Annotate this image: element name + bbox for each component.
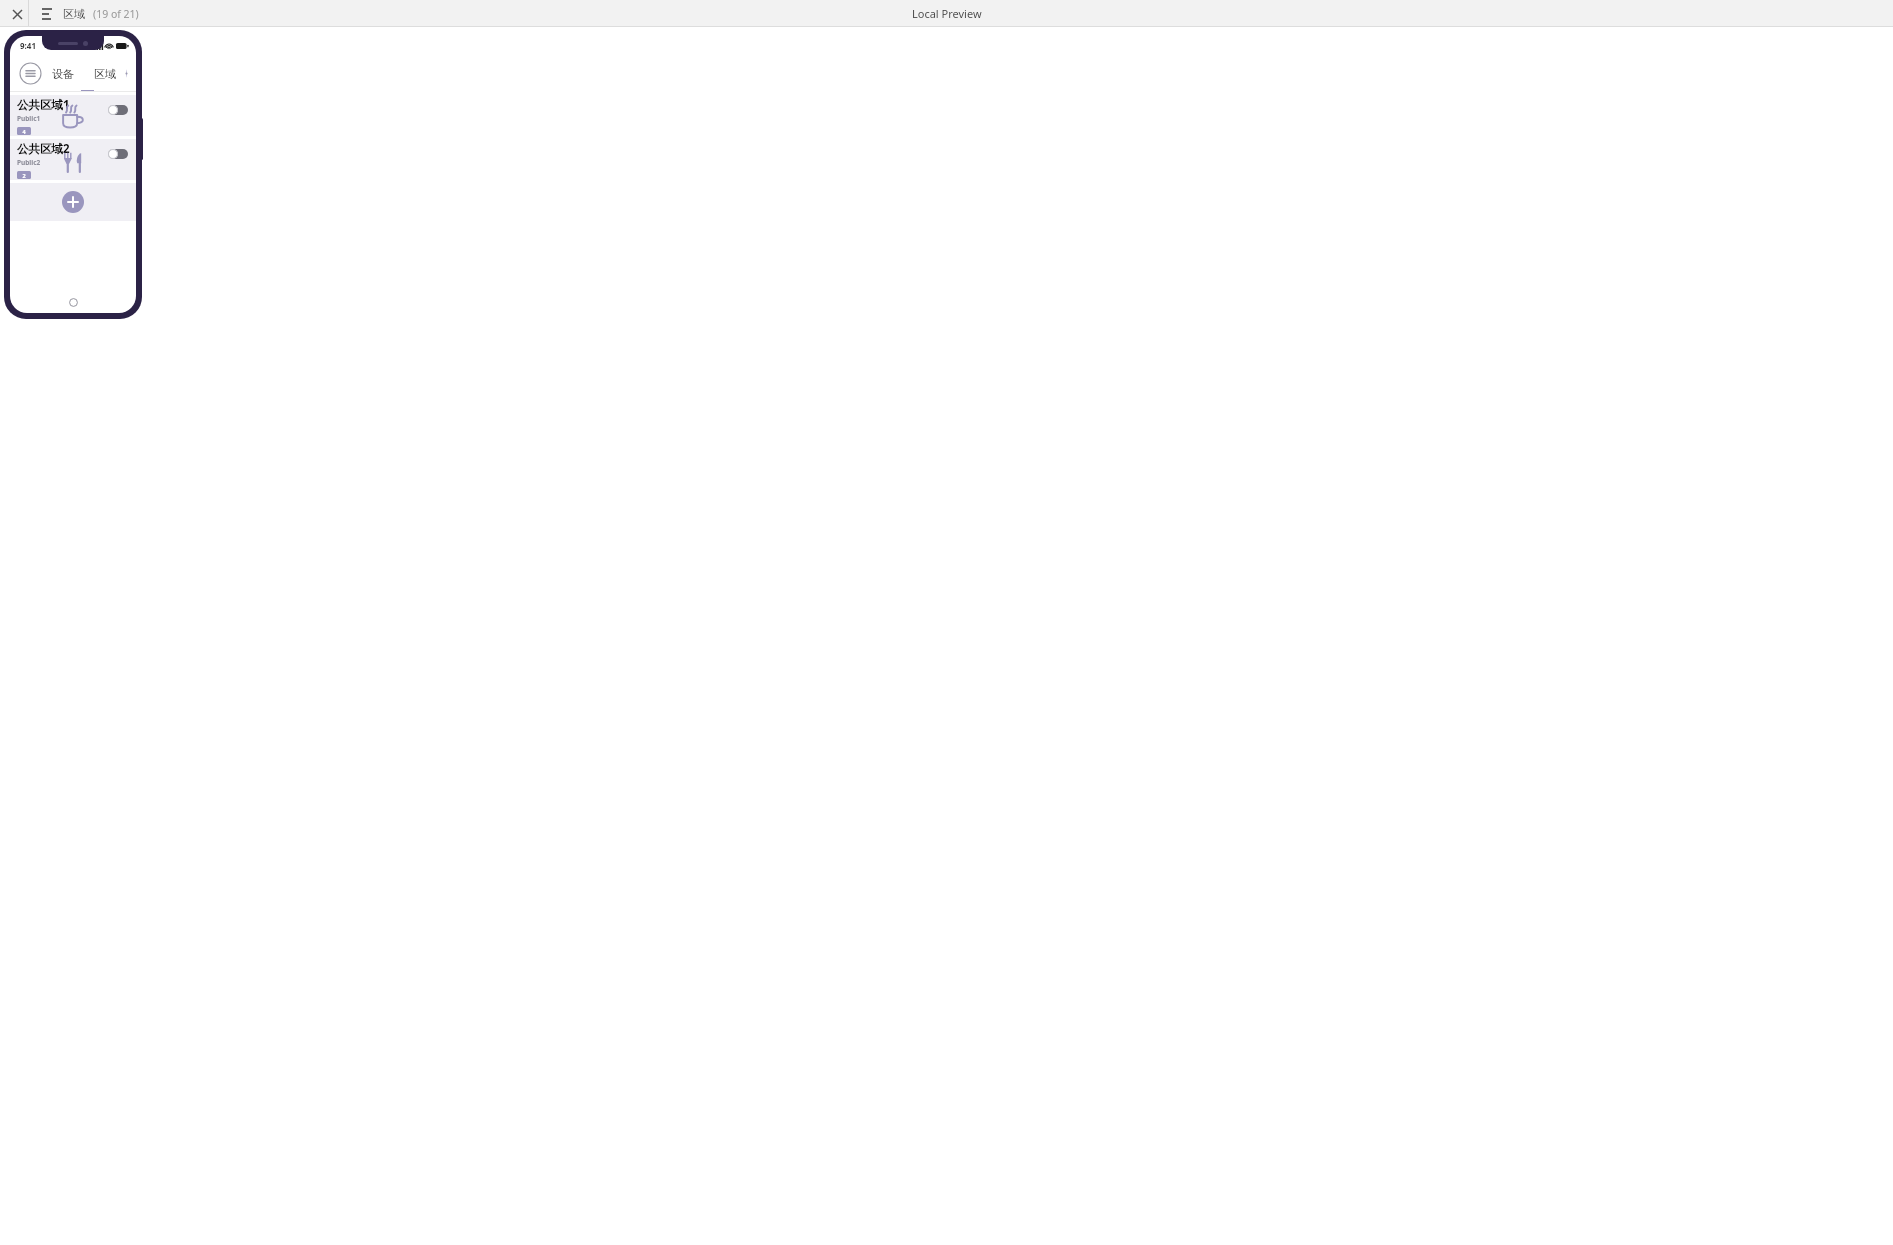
staticText: 设备 (52, 67, 74, 81)
staticText: 区域 (63, 7, 85, 21)
button[interactable]: 区域 (84, 61, 126, 87)
staticText: 9:41 (20, 40, 36, 51)
staticText: Public2 (17, 158, 41, 167)
staticText: 区域 (94, 67, 116, 81)
button[interactable]: Add zone (10, 183, 136, 221)
staticText: 公共区域1 (17, 97, 70, 113)
button[interactable]: Navigation menu (19, 62, 42, 85)
button[interactable]: Close (6, 3, 28, 25)
staticText: Public1 (17, 114, 41, 123)
button[interactable]: 公共区域2 (10, 139, 136, 180)
button[interactable]: Preview (126, 62, 127, 85)
button[interactable]: 公共区域1 (10, 95, 136, 136)
button[interactable]: Toggle zone (108, 105, 128, 115)
button[interactable]: 设备 (42, 61, 84, 87)
staticText: 公共区域2 (17, 141, 70, 157)
button[interactable]: Menu (37, 4, 57, 24)
staticText: Local Preview (912, 6, 982, 21)
button[interactable]: Toggle zone (108, 149, 128, 159)
staticText: (19 of 21) (93, 7, 139, 21)
staticText: 4 (22, 128, 26, 135)
staticText: 2 (22, 172, 26, 179)
